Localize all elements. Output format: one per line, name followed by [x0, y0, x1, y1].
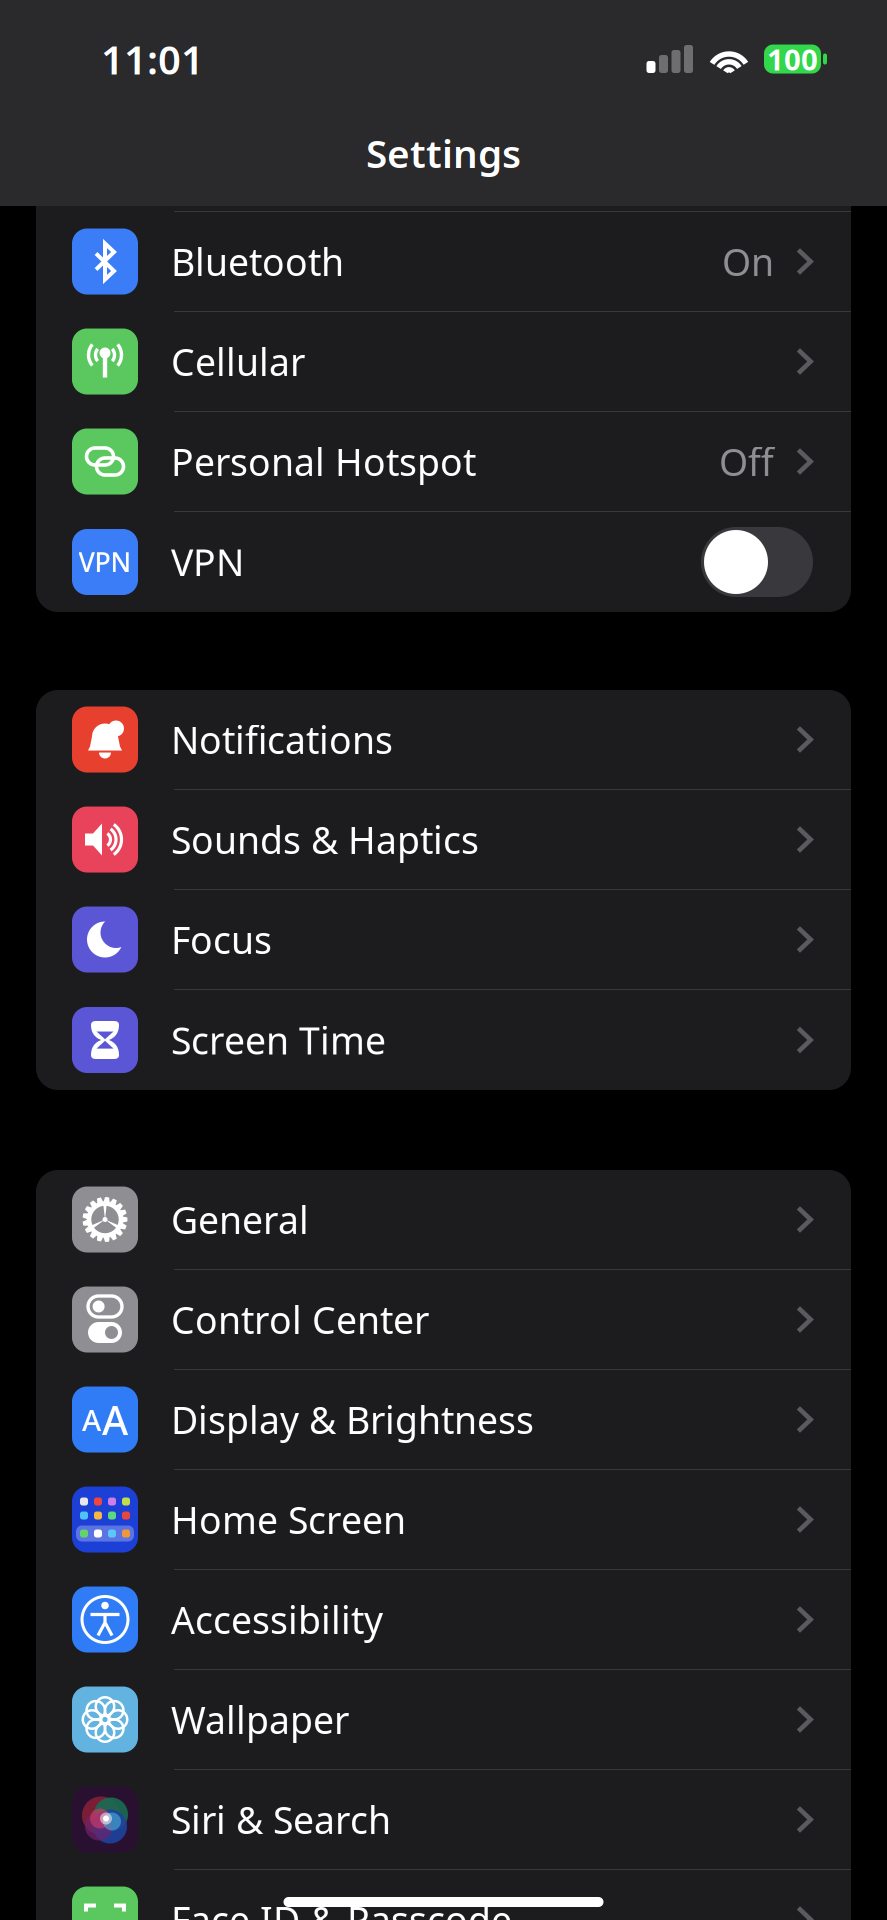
button[interactable]: Bluetooth: [36, 212, 851, 312]
staticText: Cellular: [171, 337, 305, 386]
button[interactable]: Face ID & Passcode: [36, 1870, 851, 1920]
staticText: Wallpaper: [171, 1695, 349, 1744]
button[interactable]: Personal Hotspot: [36, 412, 851, 512]
button[interactable]: VPN: [36, 512, 851, 612]
button[interactable]: Siri & Search: [36, 1770, 851, 1870]
button[interactable]: Notifications: [36, 690, 851, 790]
button[interactable]: Focus: [36, 890, 851, 990]
staticText: Display & Brightness: [171, 1395, 534, 1444]
staticText: Personal Hotspot: [171, 437, 476, 486]
staticText: Screen Time: [171, 1015, 386, 1065]
button[interactable]: Accessibility: [36, 1570, 851, 1670]
staticText: Bluetooth: [171, 237, 344, 286]
button[interactable]: Wi-Fi: [36, 112, 851, 212]
staticText: Home Screen: [171, 1495, 406, 1544]
staticText: Notifications: [171, 715, 393, 764]
staticText: 11:01: [101, 32, 204, 85]
staticText: Sounds & Haptics: [171, 815, 479, 864]
staticText: VPN: [78, 544, 131, 580]
staticText: A: [102, 1393, 128, 1446]
staticText: On: [722, 237, 774, 286]
staticText: A: [82, 1400, 101, 1439]
staticText: Face ID & Passcode: [171, 1895, 512, 1920]
staticText: Focus: [171, 915, 272, 964]
button[interactable]: Home Screen: [36, 1470, 851, 1570]
staticText: 100: [767, 39, 818, 78]
button[interactable]: Screen Time: [36, 990, 851, 1090]
button[interactable]: Sounds & Haptics: [36, 790, 851, 890]
staticText: Accessibility: [171, 1595, 383, 1644]
button[interactable]: A: [36, 1370, 851, 1470]
button[interactable]: General: [36, 1170, 851, 1270]
staticText: Settings: [366, 127, 521, 179]
button[interactable]: Cellular: [36, 312, 851, 412]
staticText: Control Center: [171, 1295, 429, 1344]
staticText: General: [171, 1195, 309, 1244]
staticText: Off: [719, 437, 774, 486]
button[interactable]: Wallpaper: [36, 1670, 851, 1770]
staticText: Siri & Search: [171, 1795, 391, 1844]
staticText: VPN: [171, 537, 244, 587]
button[interactable]: Control Center: [36, 1270, 851, 1370]
